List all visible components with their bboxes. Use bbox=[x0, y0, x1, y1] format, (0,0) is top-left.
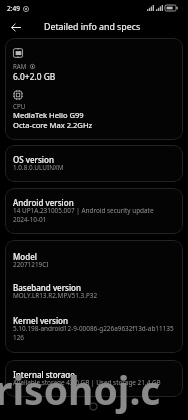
staticText: risohoj.c bbox=[0, 363, 161, 416]
button[interactable]: OS version bbox=[5, 145, 183, 182]
staticText: OS version bbox=[13, 154, 54, 163]
staticText: RAM bbox=[13, 62, 27, 70]
staticText: Kernel version bbox=[13, 315, 69, 324]
button[interactable]: Android version bbox=[5, 188, 183, 234]
staticText: 5.10.198-android12-9-00086-g226a9632f13d… bbox=[13, 324, 174, 333]
staticText: Baseband version bbox=[13, 282, 82, 291]
button[interactable]: Model bbox=[5, 240, 183, 353]
staticText: Detailed info and specs bbox=[44, 21, 141, 33]
staticText: MOLY.LR13.R2.MP.V51.3.P32 bbox=[13, 291, 98, 300]
staticText: Internal storage bbox=[13, 369, 75, 378]
staticText: 14 UP1A.231005.007 | Android security up… bbox=[13, 206, 154, 215]
button[interactable]: Internal storage bbox=[5, 360, 183, 397]
staticText: 126 bbox=[13, 333, 24, 342]
staticText: Model bbox=[13, 251, 37, 260]
button[interactable]: RAM bbox=[5, 38, 183, 140]
staticText: 1.0.8.0.ULUINXM bbox=[13, 163, 64, 172]
staticText: 6.0+2.0 GB bbox=[13, 71, 56, 82]
staticText: Octa-core Max 2.2GHz bbox=[13, 120, 93, 128]
button[interactable]: Back bbox=[7, 18, 25, 36]
staticText: Available storage 42.0 GB | Used storage… bbox=[13, 378, 161, 387]
staticText: Android version bbox=[13, 197, 74, 206]
staticText: MediaTek Helio G99 bbox=[13, 110, 84, 120]
staticText: 2024-10-01 bbox=[13, 215, 47, 224]
staticText: 22071219CI bbox=[13, 260, 49, 269]
staticText: CPU bbox=[13, 102, 26, 110]
staticText: 2:49 bbox=[7, 4, 20, 13]
